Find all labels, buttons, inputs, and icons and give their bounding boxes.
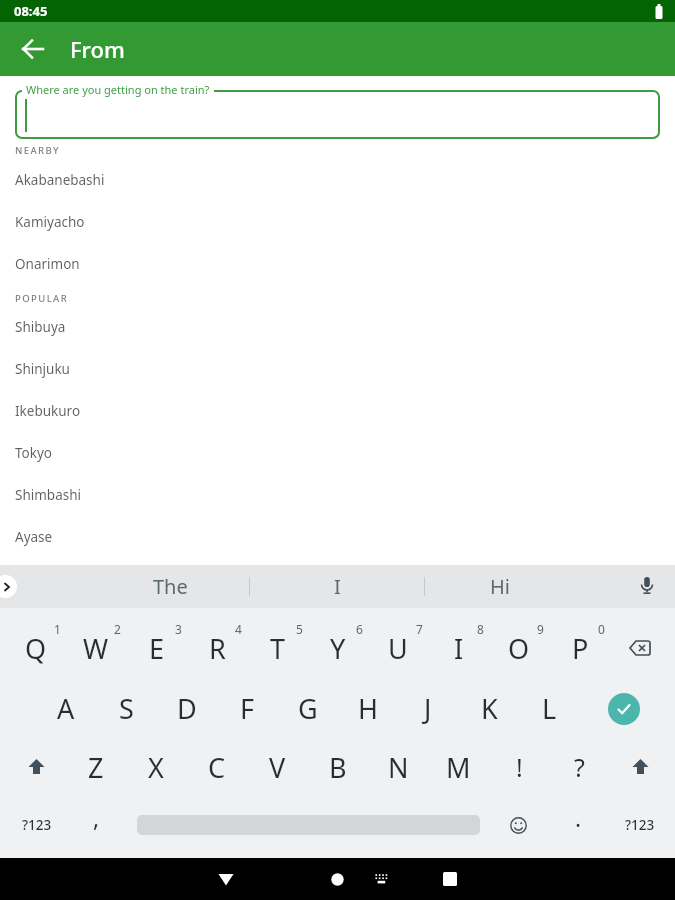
button[interactable]: I [287, 565, 387, 608]
staticText: E [149, 630, 165, 667]
button[interactable]: J [399, 681, 457, 735]
button[interactable]: , [76, 795, 116, 839]
staticText: ? [574, 750, 585, 784]
staticText: S [119, 690, 134, 727]
button[interactable]: ? [550, 740, 608, 794]
button[interactable]: F [218, 681, 276, 735]
staticText: ?123 [625, 816, 655, 834]
staticText: Akabanebashi [15, 171, 105, 189]
button[interactable]: Shibuya [0, 306, 675, 348]
button[interactable]: Ikebukuro [0, 390, 675, 432]
button[interactable]: Tokyo [0, 432, 675, 474]
button[interactable]: T [249, 621, 307, 675]
staticText: ?123 [22, 816, 52, 834]
staticText: F [240, 690, 255, 727]
button[interactable]: S [97, 681, 155, 735]
button[interactable]: D [158, 681, 216, 735]
button[interactable]: O [490, 621, 548, 675]
staticText: Y [330, 630, 346, 667]
staticText: POPULAR [15, 292, 69, 305]
staticText: G [298, 690, 318, 727]
staticText: C [208, 749, 226, 786]
staticText: R [209, 630, 226, 667]
button[interactable]: A [37, 681, 95, 735]
button[interactable]: Shimbashi [0, 474, 675, 516]
button[interactable] [611, 740, 669, 794]
button[interactable]: The [120, 565, 220, 608]
button[interactable]: Z [67, 740, 125, 794]
staticText: 0 [598, 621, 605, 637]
staticText: 4 [235, 621, 242, 637]
button[interactable]: X [127, 740, 185, 794]
button[interactable]: N [369, 740, 427, 794]
button[interactable]: R [188, 621, 246, 675]
button[interactable]: Kamiyacho [0, 201, 675, 243]
button[interactable]: Q [7, 621, 65, 675]
staticText: I [454, 630, 464, 667]
staticText: K [481, 690, 498, 727]
button[interactable]: ?123 [611, 798, 669, 852]
button[interactable]: K [460, 681, 518, 735]
button[interactable]: M [429, 740, 487, 794]
staticText: Kamiyacho [15, 213, 85, 231]
staticText: 08:45 [14, 2, 48, 20]
button[interactable] [0, 575, 17, 598]
staticText: P [572, 630, 589, 667]
button[interactable]: Hi [450, 565, 550, 608]
button[interactable]: U [369, 621, 427, 675]
button[interactable]: E [128, 621, 186, 675]
button[interactable] [430, 859, 470, 899]
button[interactable]: G [279, 681, 337, 735]
staticText: Ayase [15, 528, 53, 546]
button[interactable]: ! [490, 740, 548, 794]
button[interactable]: Akabanebashi [0, 159, 675, 201]
button[interactable]: H [339, 681, 397, 735]
staticText: 7 [416, 621, 423, 637]
button[interactable]: V [248, 740, 306, 794]
staticText: I [334, 573, 341, 600]
button[interactable]: P [551, 621, 609, 675]
staticText: Shibuya [15, 318, 66, 336]
staticText: V [269, 749, 286, 786]
staticText: 1 [54, 621, 61, 637]
staticText: 2 [114, 621, 121, 637]
button[interactable] [504, 811, 532, 839]
button[interactable]: C [188, 740, 246, 794]
staticText: . [575, 802, 582, 833]
button[interactable]: I [430, 621, 488, 675]
button[interactable]: Y [309, 621, 367, 675]
button[interactable] [608, 693, 640, 725]
staticText: Where are you getting on the train? [26, 82, 210, 97]
staticText: The [153, 573, 188, 600]
staticText: O [508, 630, 530, 667]
button[interactable]: L [520, 681, 578, 735]
staticText: A [57, 690, 75, 727]
button[interactable] [206, 859, 246, 899]
staticText: J [424, 690, 432, 727]
button[interactable]: B [309, 740, 367, 794]
staticText: X [148, 749, 164, 786]
button[interactable] [15, 90, 660, 139]
button[interactable]: . [558, 795, 598, 839]
button[interactable] [611, 621, 669, 675]
button[interactable]: W [67, 621, 125, 675]
button[interactable] [368, 866, 394, 892]
button[interactable] [7, 740, 65, 794]
button[interactable]: Onarimon [0, 243, 675, 285]
staticText: T [270, 630, 286, 667]
staticText: Onarimon [15, 255, 80, 273]
button[interactable] [634, 573, 660, 599]
staticText: Q [25, 630, 47, 667]
staticText: Ikebukuro [15, 402, 81, 420]
staticText: Shinjuku [15, 360, 70, 378]
button[interactable]: Ayase [0, 516, 675, 558]
button[interactable]: ?123 [8, 798, 66, 852]
staticText: 6 [356, 621, 363, 637]
button[interactable] [317, 859, 357, 899]
staticText: 3 [175, 621, 182, 637]
button[interactable] [11, 27, 55, 71]
staticText: Tokyo [15, 444, 52, 462]
button[interactable]: Shinjuku [0, 348, 675, 390]
staticText: Z [88, 749, 104, 786]
